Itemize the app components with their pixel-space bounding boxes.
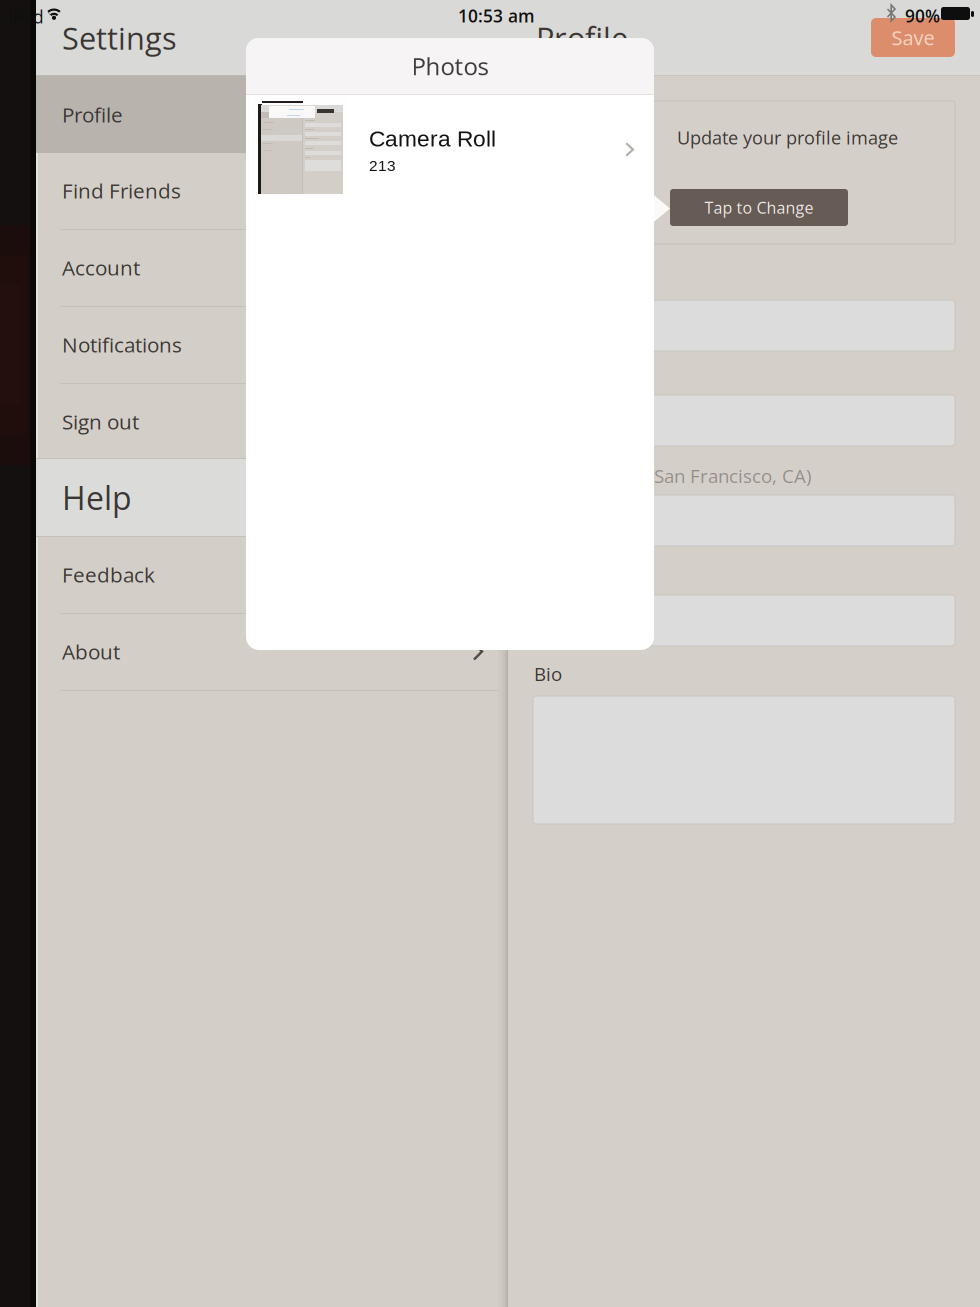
staticText: iPad	[9, 5, 44, 29]
button[interactable]: Notifications	[36, 306, 508, 383]
staticText: Bio	[534, 661, 562, 686]
staticText: 213	[369, 157, 396, 174]
button[interactable]: Tap to Change	[670, 189, 848, 226]
staticText: Notifications	[62, 330, 182, 358]
button[interactable]: Help	[36, 459, 508, 536]
button[interactable]: Profile	[36, 76, 508, 153]
staticText: Find Friends	[62, 176, 181, 204]
staticText: Settings	[62, 17, 177, 59]
staticText: Update your profile image	[677, 125, 898, 150]
button[interactable]: Account	[36, 229, 508, 306]
button[interactable]: Feedback	[36, 536, 508, 613]
staticText: Account	[62, 253, 140, 281]
button[interactable]: About	[36, 613, 508, 690]
staticText: Help	[62, 476, 132, 519]
button[interactable]: Find Friends	[36, 152, 508, 229]
staticText: Location (e.g. San Francisco, CA)	[534, 463, 812, 488]
staticText: Camera Roll	[369, 126, 496, 151]
staticText: Profile	[536, 17, 628, 59]
staticText: 90%	[905, 4, 940, 28]
button[interactable]: Sign out	[36, 383, 508, 460]
staticText: Feedback	[62, 560, 155, 588]
staticText: Tap to Change	[704, 197, 813, 218]
button[interactable]: Save	[871, 18, 955, 57]
staticText: Sign out	[62, 407, 139, 435]
staticText: Photos	[411, 50, 488, 82]
staticText: Profile	[62, 100, 123, 128]
staticText: About	[62, 637, 120, 665]
button[interactable]: Camera Roll	[246, 95, 654, 205]
staticText: 10:53 am	[458, 4, 535, 28]
staticText: Save	[891, 24, 934, 51]
